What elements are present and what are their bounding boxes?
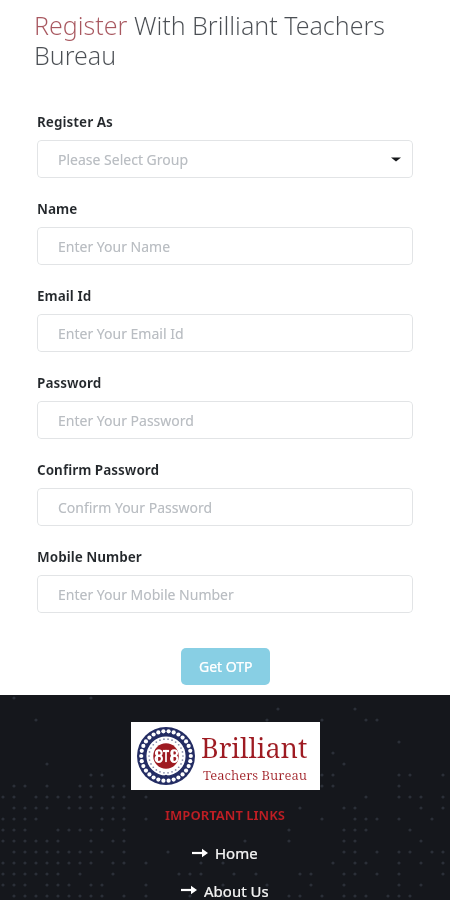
button[interactable]: Enter Your Password	[37, 401, 413, 439]
staticText: Register As	[37, 113, 113, 131]
staticText: Please Select Group	[58, 150, 189, 169]
staticText: Confirm Password	[37, 461, 160, 479]
staticText: Get OTP	[199, 657, 253, 676]
button[interactable]: Enter Your Mobile Number	[37, 575, 413, 613]
staticText: Enter Your Mobile Number	[58, 585, 234, 604]
button[interactable]: Home	[182, 841, 268, 865]
staticText: Email Id	[37, 287, 92, 305]
button[interactable]: Enter Your Name	[37, 227, 413, 265]
button[interactable]: Please Select Group	[37, 140, 413, 178]
staticText: Password	[37, 374, 102, 392]
staticText: Register With Brilliant Teachers Bureau	[34, 8, 426, 73]
button[interactable]: Brilliant Teachers Bureau logo	[131, 722, 320, 790]
staticText: Home	[215, 843, 258, 863]
button[interactable]: About Us	[171, 879, 279, 900]
staticText: Mobile Number	[37, 548, 142, 566]
button[interactable]: Get OTP	[181, 648, 270, 685]
staticText: Enter Your Name	[58, 237, 171, 256]
staticText: IMPORTANT LINKS	[165, 806, 285, 824]
button[interactable]: Confirm Your Password	[37, 488, 413, 526]
staticText: Enter Your Password	[58, 411, 194, 430]
staticText: Brilliant	[201, 729, 308, 766]
staticText: Teachers Bureau	[203, 766, 307, 784]
staticText: About Us	[204, 881, 269, 898]
staticText: Enter Your Email Id	[58, 324, 184, 343]
staticText: Confirm Your Password	[58, 498, 212, 517]
button[interactable]: Enter Your Email Id	[37, 314, 413, 352]
staticText: Name	[37, 200, 78, 218]
